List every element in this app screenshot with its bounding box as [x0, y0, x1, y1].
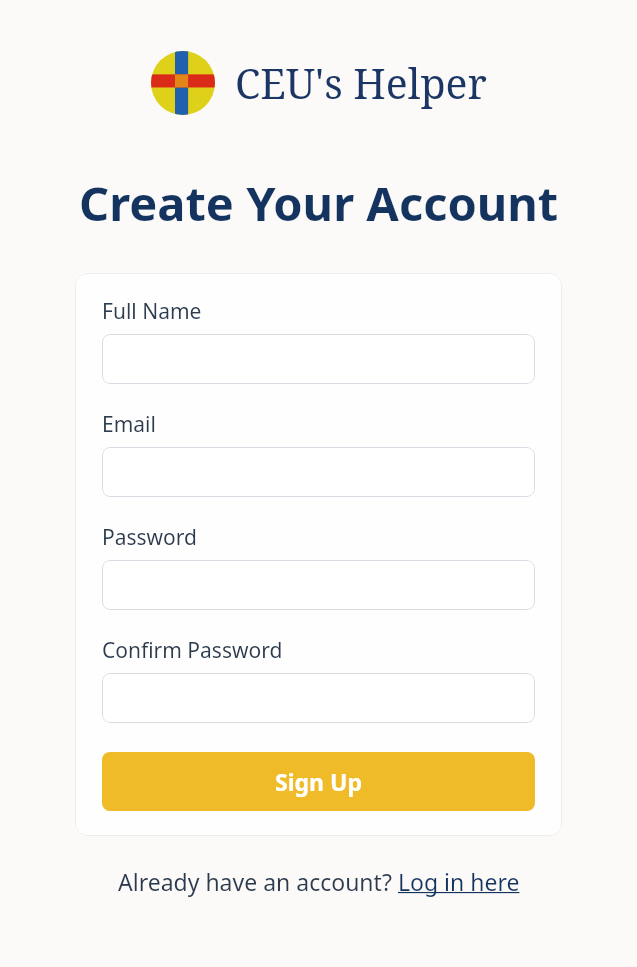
button[interactable]: CEU's Helper: [151, 51, 487, 115]
staticText: Confirm Password: [102, 636, 283, 665]
button[interactable]: Confirm Password: [102, 673, 535, 723]
button[interactable]: Full Name: [102, 334, 535, 384]
staticText: Email: [102, 410, 156, 439]
button[interactable]: Log in here: [398, 866, 520, 897]
staticText: Password: [102, 523, 197, 552]
button[interactable]: Email: [102, 447, 535, 497]
staticText: Already have an account?: [118, 866, 398, 897]
staticText: Full Name: [102, 297, 202, 326]
button[interactable]: Sign Up: [102, 752, 535, 811]
staticText: Sign Up: [275, 766, 362, 797]
button[interactable]: Password: [102, 560, 535, 610]
staticText: CEU's Helper: [235, 55, 487, 111]
staticText: Log in here: [398, 866, 520, 897]
staticText: Create Your Account: [79, 171, 559, 235]
